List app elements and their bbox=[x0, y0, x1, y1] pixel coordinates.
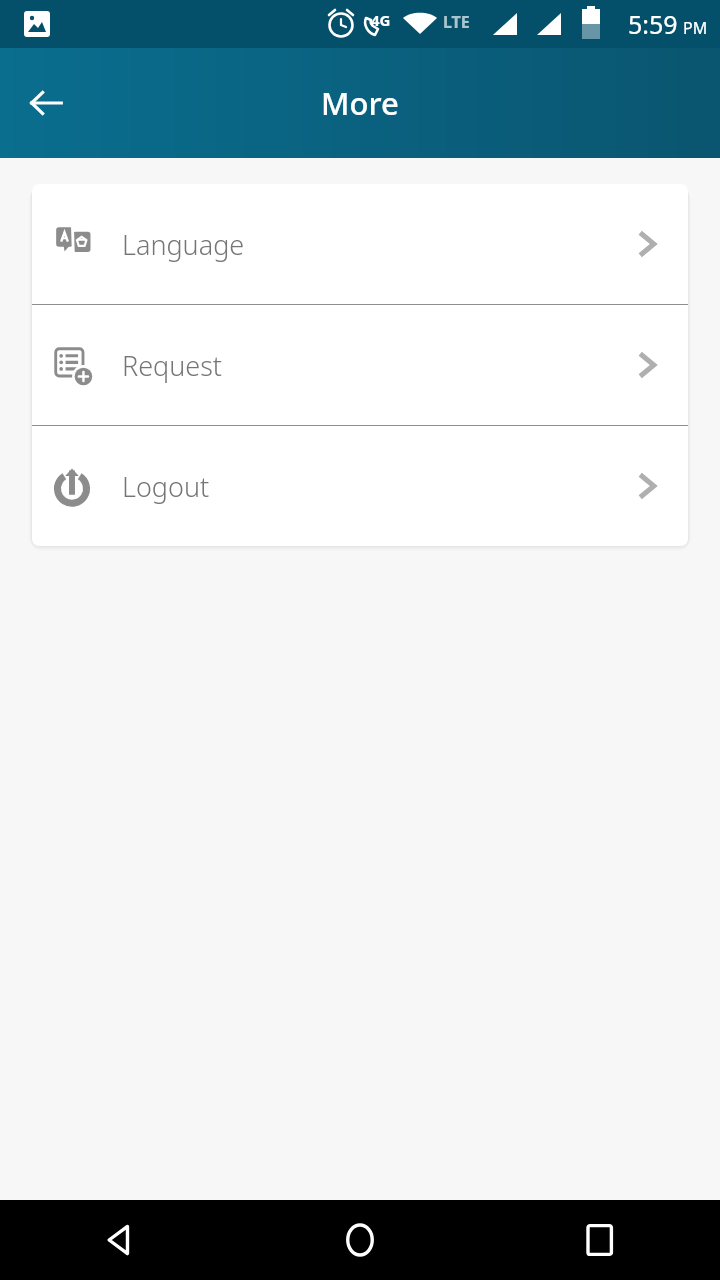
button[interactable]: Request bbox=[32, 305, 688, 425]
button[interactable]: Home bbox=[240, 1200, 480, 1280]
staticText: LTE bbox=[443, 11, 470, 33]
button[interactable]: Recent apps bbox=[480, 1200, 720, 1280]
staticText: 5:59 bbox=[628, 7, 678, 41]
staticText: More bbox=[321, 82, 399, 124]
staticText: Request bbox=[122, 347, 223, 384]
staticText: Logout bbox=[122, 468, 210, 505]
staticText: Language bbox=[122, 226, 245, 263]
staticText: 4G bbox=[371, 10, 391, 30]
button[interactable]: Back bbox=[0, 1200, 240, 1280]
button[interactable]: Logout bbox=[32, 426, 688, 546]
staticText: PM bbox=[683, 17, 708, 39]
button[interactable]: Language bbox=[32, 184, 688, 304]
button[interactable]: Back bbox=[14, 71, 78, 135]
